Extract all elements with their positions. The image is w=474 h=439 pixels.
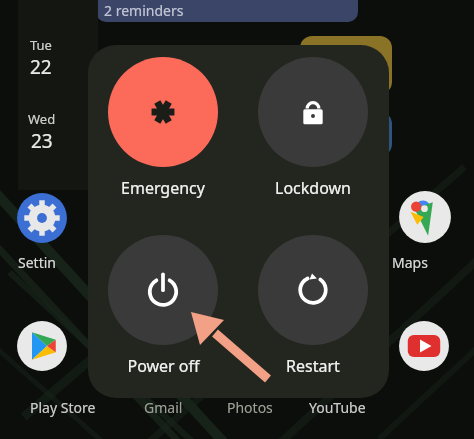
staticText: Emergency	[121, 177, 205, 199]
button[interactable]: Power off	[88, 235, 238, 377]
staticText: Restart	[286, 355, 340, 377]
button[interactable]: Play Store	[16, 320, 68, 372]
staticText: 22	[30, 54, 52, 80]
staticText: YouTube	[309, 398, 366, 417]
staticText: 23	[31, 128, 53, 154]
staticText: Tue	[30, 36, 52, 54]
button[interactable]: Emergency	[88, 57, 238, 199]
staticText: Wed	[28, 110, 56, 128]
button[interactable]: 2 reminders	[96, 0, 358, 22]
staticText: Lockdown	[275, 177, 351, 199]
staticText: Gmail	[144, 398, 183, 417]
staticText: Play Store	[30, 398, 96, 417]
staticText: Maps	[392, 253, 428, 272]
button[interactable]: Maps	[398, 190, 452, 244]
staticText: 2 reminders	[104, 1, 184, 20]
staticText: Power off	[127, 355, 200, 377]
button[interactable]: YouTube	[398, 320, 450, 372]
button[interactable]: Restart	[238, 235, 388, 377]
staticText: Photos	[227, 398, 273, 417]
button[interactable]: Lockdown	[238, 57, 388, 199]
staticText: Settin	[18, 253, 56, 272]
button[interactable]: Settings	[16, 192, 68, 244]
